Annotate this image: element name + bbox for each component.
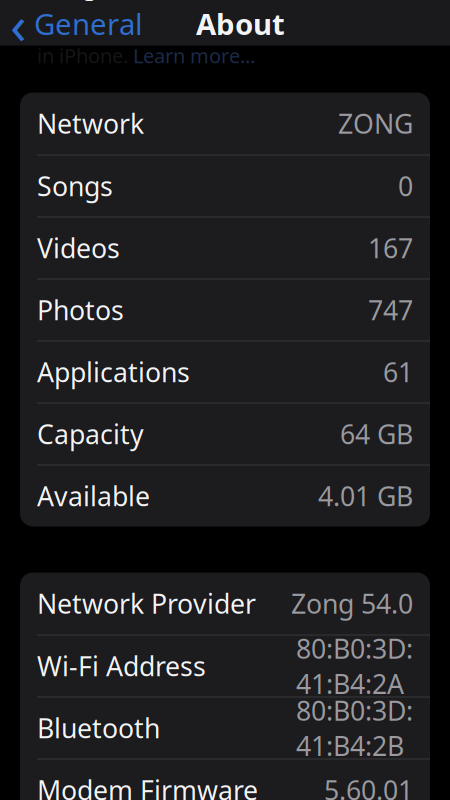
button[interactable]: Applications (20, 340, 430, 402)
button[interactable]: Capacity (20, 402, 430, 464)
staticText: 167 (368, 230, 413, 266)
staticText: Network (37, 106, 144, 141)
button[interactable]: Modem Firmware (20, 758, 430, 800)
staticText: ‹ (10, 0, 27, 59)
staticText: Videos (37, 230, 120, 266)
staticText: 61 (383, 354, 413, 390)
staticText: 5.60.01 (324, 772, 413, 800)
staticText: ZONG (338, 106, 413, 141)
staticText: Zong (42, 0, 97, 1)
button[interactable]: Wi-Fi Address (20, 634, 430, 696)
button[interactable]: Network (20, 92, 430, 154)
button[interactable]: Available (20, 464, 430, 526)
button[interactable]: Network Provider (20, 572, 430, 634)
staticText: About (196, 4, 285, 43)
staticText: 4.01 GB (318, 478, 413, 514)
staticText: Capacity (37, 416, 144, 452)
button[interactable]: Videos (20, 216, 430, 278)
staticText: General (34, 4, 143, 43)
staticText: 80:B0:3D:41:B4:2B (296, 693, 413, 763)
staticText: Applications (37, 354, 190, 390)
staticText: in iPhone. (37, 42, 128, 69)
staticText: 80:B0:3D:41:B4:2A (296, 631, 413, 701)
button[interactable]: Bluetooth (20, 696, 430, 758)
staticText: 0 (398, 168, 413, 204)
staticText: Network Provider (37, 586, 256, 621)
button[interactable]: Songs (20, 154, 430, 216)
staticText: Available (37, 478, 150, 514)
staticText: Modem Firmware (37, 772, 258, 800)
staticText: 747 (368, 292, 413, 328)
staticText: Zong 54.0 (291, 586, 413, 621)
staticText: Bluetooth (37, 710, 160, 746)
button[interactable]: ‹ (0, 1, 151, 45)
staticText: Songs (37, 168, 113, 204)
staticText: 64 GB (340, 416, 413, 452)
staticText: Photos (37, 292, 124, 328)
staticText: Learn more... (133, 42, 255, 69)
staticText: Wi-Fi Address (37, 648, 206, 684)
button[interactable]: Photos (20, 278, 430, 340)
